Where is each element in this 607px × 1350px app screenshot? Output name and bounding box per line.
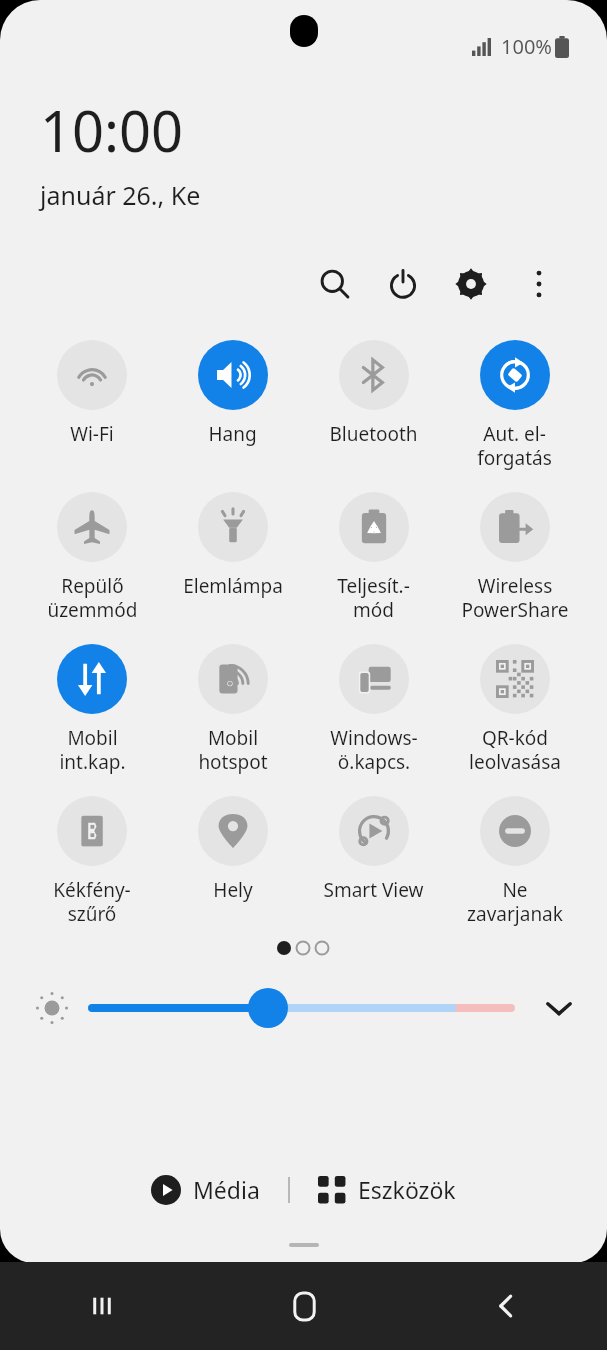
staticText: Hely [213, 877, 253, 903]
staticText: Elemlámpa [183, 573, 283, 599]
staticText: Hang [208, 421, 257, 447]
staticText: Teljesít.- mód [337, 573, 410, 622]
button[interactable]: Settings [437, 250, 505, 318]
staticText: Ne zavarjanak [467, 877, 563, 926]
staticText: Mobil hotspot [198, 725, 268, 774]
staticText: Média [193, 1174, 260, 1205]
button[interactable]: Bluetooth [303, 336, 444, 451]
staticText: Windows- ö.kapcs. [330, 725, 418, 774]
button[interactable]: Elemlámpa [162, 488, 303, 603]
staticText: Eszközök [358, 1174, 456, 1205]
button[interactable]: Teljesít.- mód [303, 488, 444, 626]
staticText: Aut. el- forgatás [477, 421, 552, 470]
button[interactable]: Aut. el- forgatás [444, 336, 585, 474]
button[interactable]: Eszközök [308, 1166, 466, 1213]
staticText: Bluetooth [329, 421, 418, 447]
button[interactable]: Mobil int.kap. [22, 640, 162, 778]
staticText: Kékfény- szűrő [53, 877, 131, 926]
button[interactable]: Search [301, 250, 369, 318]
button[interactable]: Hely [162, 792, 303, 907]
button[interactable]: More options [505, 250, 573, 318]
staticText: 10:00 [40, 92, 184, 168]
button[interactable]: Windows- ö.kapcs. [303, 640, 444, 778]
button[interactable]: Expand [533, 982, 585, 1034]
button[interactable]: Recents [0, 1262, 203, 1350]
staticText: QR-kód leolvasása [469, 725, 561, 774]
staticText: Mobil int.kap. [59, 725, 126, 774]
staticText: január 26., Ke [40, 178, 201, 212]
staticText: Repülő üzemmód [47, 573, 138, 622]
staticText: Wi-Fi [70, 421, 114, 447]
staticText: Wireless PowerShare [461, 573, 569, 622]
button[interactable]: Wi-Fi [22, 336, 162, 451]
button[interactable]: Média [141, 1166, 270, 1213]
button[interactable]: Power [369, 250, 437, 318]
button[interactable]: Back [405, 1262, 607, 1350]
button[interactable]: Home [203, 1262, 405, 1350]
staticText: 100% [501, 33, 552, 60]
button[interactable]: Kékfény- szűrő [22, 792, 162, 930]
button[interactable]: Mobil hotspot [162, 640, 303, 778]
button[interactable]: Hang [162, 336, 303, 451]
staticText: Smart View [323, 877, 424, 903]
button[interactable]: Smart View [303, 792, 444, 907]
button[interactable]: Repülő üzemmód [22, 488, 162, 626]
button[interactable]: Wireless PowerShare [444, 488, 585, 626]
button[interactable] [92, 988, 511, 1028]
button[interactable]: QR-kód leolvasása [444, 640, 585, 778]
button[interactable]: Ne zavarjanak [444, 792, 585, 930]
